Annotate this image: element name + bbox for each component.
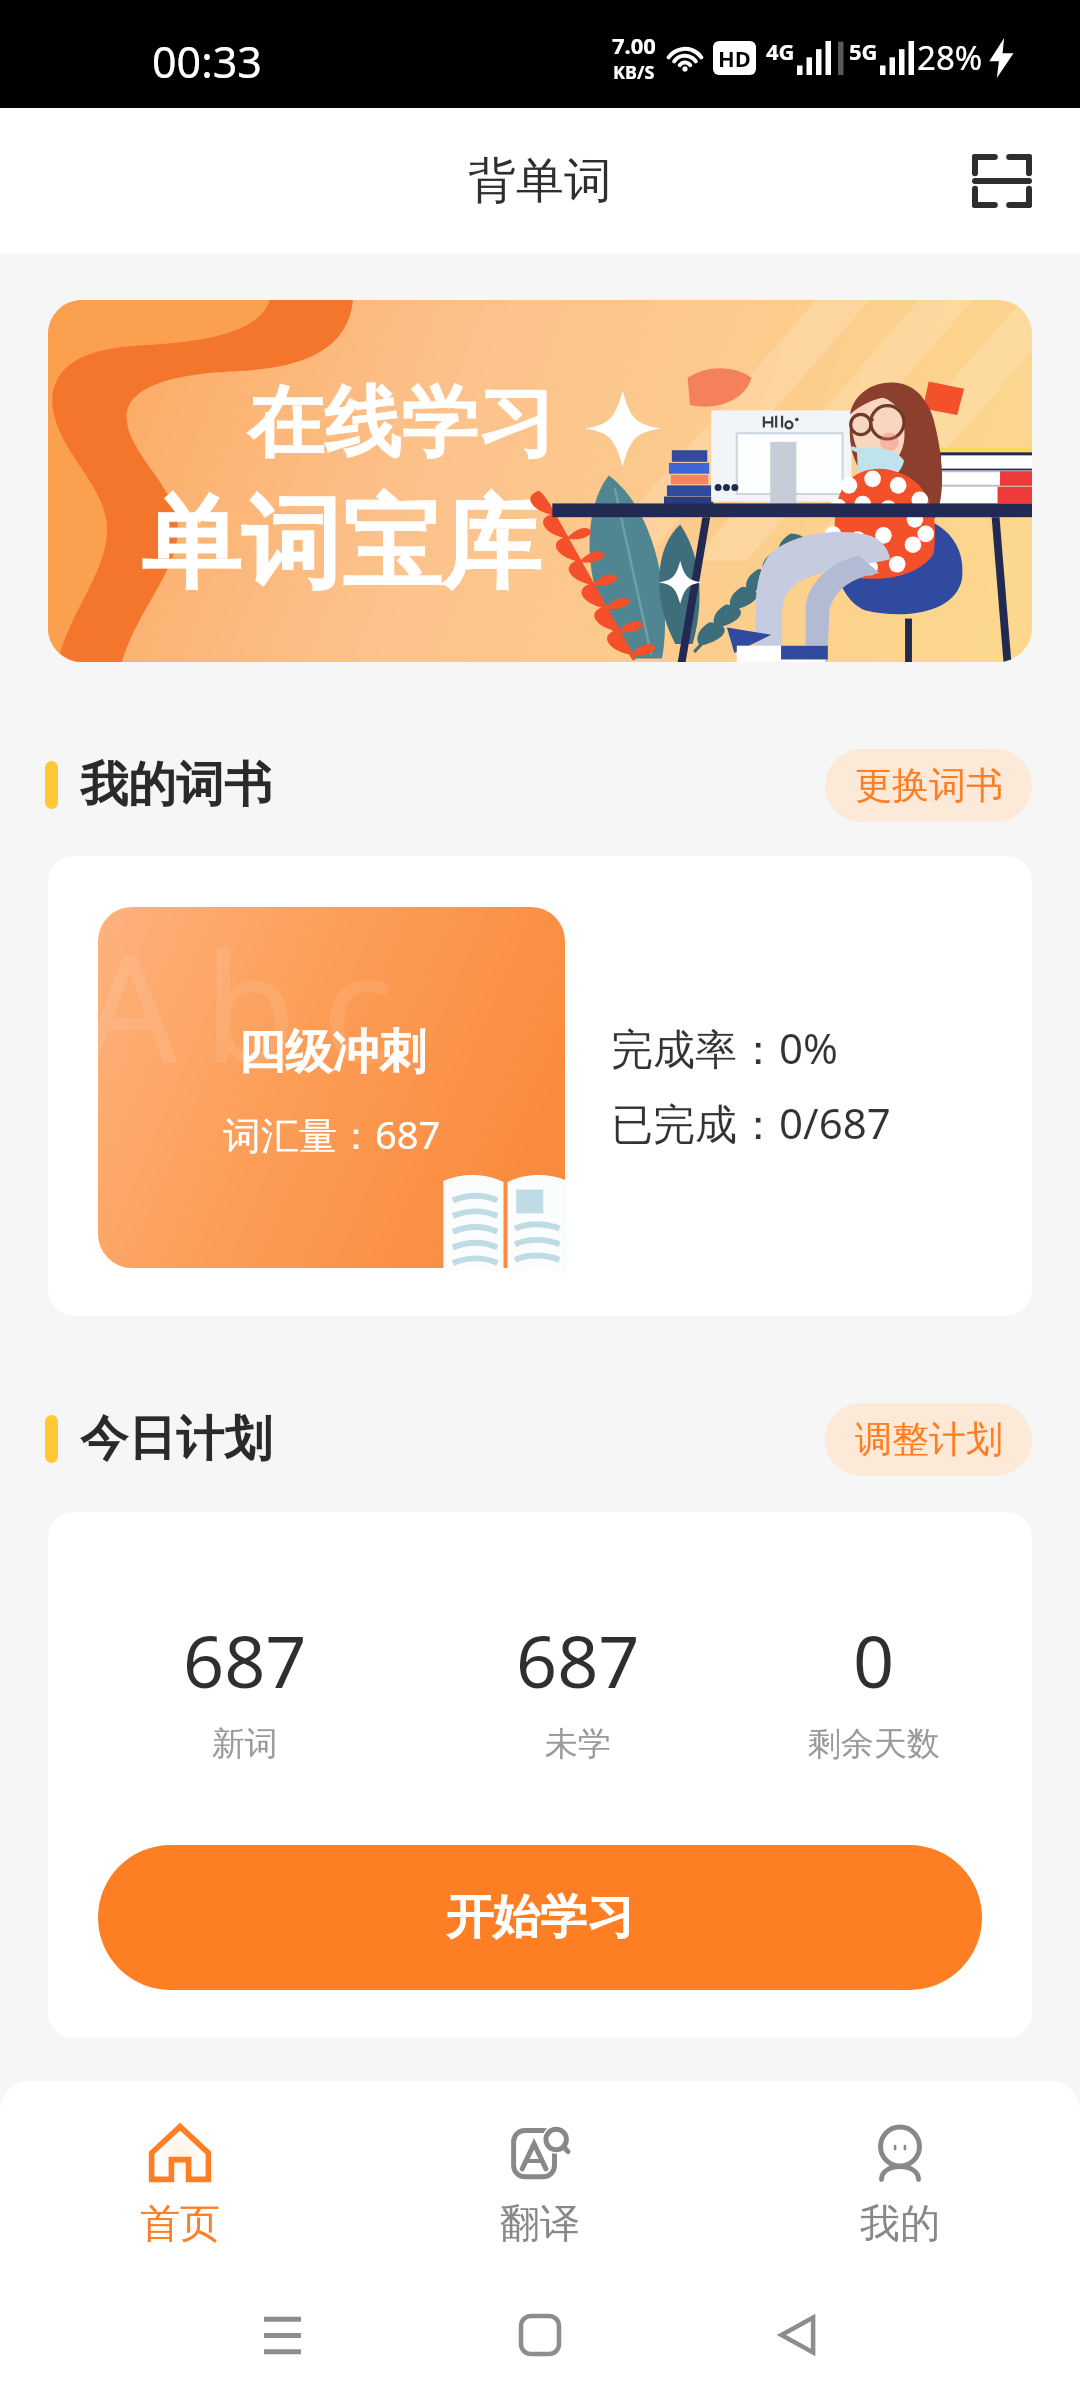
staticText: 新词	[212, 1723, 278, 1765]
staticText: 0	[853, 1611, 895, 1709]
staticText: 28%	[917, 35, 983, 80]
staticText: 首页	[140, 2198, 220, 2248]
staticText: 单词宝库	[141, 482, 541, 608]
staticText: 更换词书	[855, 762, 1003, 809]
staticText: 四级冲刺	[238, 1023, 426, 1082]
staticText: 687	[183, 1611, 307, 1709]
button[interactable]: 我的	[720, 2081, 1080, 2270]
staticText: Abc	[98, 907, 421, 1107]
staticText: 5G	[849, 36, 878, 66]
staticText: 开始学习	[446, 1888, 634, 1947]
button[interactable]: 开始学习	[98, 1845, 982, 1990]
button[interactable]: Back	[748, 2285, 848, 2385]
button[interactable]: 更换词书	[825, 749, 1032, 822]
staticText: 剩余天数	[808, 1723, 940, 1765]
staticText: 我的	[860, 2198, 940, 2248]
staticText: 未学	[545, 1723, 611, 1765]
staticText: 687	[516, 1611, 640, 1709]
staticText: 今日计划	[80, 1409, 272, 1469]
staticText: 我的词书	[80, 755, 272, 815]
button[interactable]: 首页	[0, 2081, 360, 2270]
button[interactable]: Recent apps	[232, 2285, 332, 2385]
staticText: 4G	[766, 36, 795, 66]
button[interactable]: Scan code	[962, 141, 1042, 221]
staticText: 翻译	[500, 2198, 580, 2248]
staticText: KB/S	[613, 60, 655, 85]
staticText: 00:33	[152, 32, 262, 91]
staticText: 完成率：0%	[611, 1019, 838, 1076]
staticText: 在线学习	[247, 375, 555, 472]
staticText: 7.00	[612, 30, 656, 60]
button[interactable]: Abc	[48, 856, 1032, 1316]
button[interactable]: Home	[490, 2285, 590, 2385]
button[interactable]: 在线学习 单词宝库 banner	[48, 300, 1032, 662]
staticText: 词汇量：687	[223, 1108, 441, 1160]
staticText: 背单词	[468, 151, 612, 211]
staticText: 调整计划	[855, 1416, 1003, 1463]
staticText: 已完成：0/687	[611, 1094, 891, 1151]
staticText: HD	[718, 43, 751, 73]
button[interactable]: 翻译	[360, 2081, 720, 2270]
button[interactable]: 调整计划	[825, 1403, 1032, 1476]
